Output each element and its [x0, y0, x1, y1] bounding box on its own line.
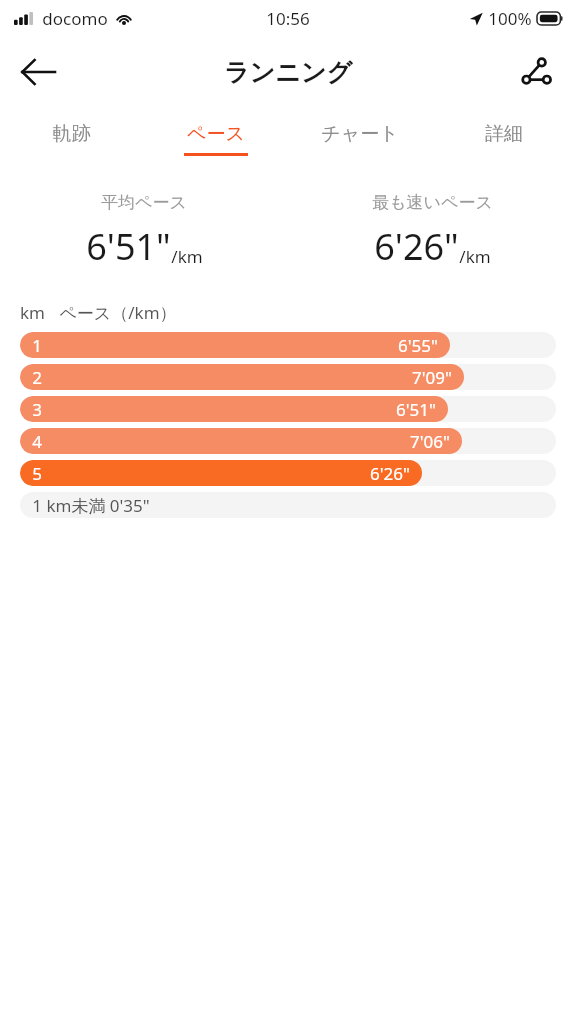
staticText: 6'26"	[370, 462, 410, 485]
staticText: 4	[32, 430, 42, 453]
staticText: /km	[171, 245, 203, 268]
staticText: /km	[459, 245, 491, 268]
button[interactable]: チャート	[288, 108, 432, 170]
staticText: ランニング	[224, 57, 352, 88]
button[interactable]: 1	[20, 332, 556, 358]
staticText: ペース	[187, 122, 245, 146]
staticText: 100%	[488, 7, 532, 30]
staticText: 6'51"	[86, 222, 171, 271]
button[interactable]: 3	[20, 396, 556, 422]
staticText: 1 km未満 0'35"	[32, 494, 150, 517]
staticText: 7'06"	[410, 430, 450, 453]
button[interactable]: ペース	[144, 108, 288, 170]
staticText: 6'51"	[396, 398, 436, 421]
staticText: 軌跡	[53, 122, 91, 146]
staticText: 6'55"	[398, 334, 438, 357]
button[interactable]: 5	[20, 460, 556, 486]
button[interactable]: 2	[20, 364, 556, 390]
staticText: 3	[32, 398, 42, 421]
staticText: ペース（/km）	[59, 301, 177, 324]
staticText: 7'09"	[412, 366, 452, 389]
staticText: チャート	[321, 122, 399, 146]
button[interactable]: 軌跡	[0, 108, 144, 170]
staticText: 6'26"	[374, 222, 459, 271]
staticText: 平均ペース	[101, 192, 187, 213]
button[interactable]: 詳細	[432, 108, 576, 170]
button[interactable]: 4	[20, 428, 556, 454]
staticText: 10:56	[266, 7, 310, 30]
staticText: 5	[32, 462, 42, 485]
staticText: docomo	[42, 7, 108, 30]
staticText: 1	[32, 334, 42, 357]
button[interactable]: Share	[510, 46, 562, 98]
button[interactable]: Back	[10, 44, 66, 100]
staticText: km	[20, 301, 45, 324]
staticText: 2	[32, 366, 42, 389]
staticText: 詳細	[485, 122, 523, 146]
staticText: 最も速いペース	[372, 192, 493, 213]
button[interactable]: 1 km未満 0'35"	[20, 492, 556, 518]
